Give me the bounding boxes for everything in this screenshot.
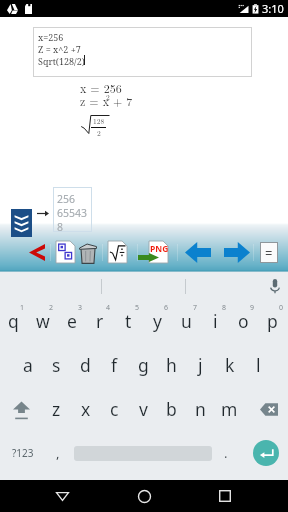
staticText: d xyxy=(80,353,91,377)
staticText: q xyxy=(8,309,19,333)
staticText: Z = x^2 +7 xyxy=(38,43,81,55)
staticText: r xyxy=(96,309,104,333)
staticText: 7 xyxy=(193,303,198,313)
button[interactable]: w xyxy=(29,307,58,341)
button[interactable]: v xyxy=(130,395,159,429)
button[interactable]: y xyxy=(144,307,173,341)
staticText: z xyxy=(52,397,61,421)
button[interactable]: a xyxy=(14,351,43,385)
button[interactable]: Insert formula xyxy=(107,240,128,264)
staticText: 3:10 xyxy=(262,1,284,16)
button[interactable]: . xyxy=(214,438,238,468)
button[interactable]: z xyxy=(43,395,72,429)
button[interactable]: e xyxy=(58,307,87,341)
button[interactable]: k xyxy=(216,351,245,385)
staticText: 65543 xyxy=(57,206,88,220)
staticText: . xyxy=(224,444,228,462)
button[interactable]: h xyxy=(158,351,187,385)
button[interactable]: q xyxy=(0,307,29,341)
button[interactable]: i xyxy=(202,307,231,341)
button[interactable]: Delete xyxy=(79,243,97,265)
staticText: y xyxy=(153,309,162,333)
button[interactable]: c xyxy=(101,395,130,429)
staticText: , xyxy=(56,444,60,462)
button[interactable]: Shift xyxy=(6,396,36,426)
staticText: 128 xyxy=(93,116,105,127)
staticText: 5 xyxy=(135,303,140,313)
staticText: 2 xyxy=(49,303,54,313)
button[interactable]: Backspace xyxy=(253,394,284,424)
button[interactable]: b xyxy=(158,395,187,429)
button[interactable]: Undo xyxy=(27,242,46,262)
button[interactable]: Voice input xyxy=(264,275,286,297)
staticText: 3 xyxy=(78,303,83,313)
button[interactable]: l xyxy=(245,351,274,385)
staticText: e xyxy=(67,309,77,333)
staticText: = xyxy=(265,244,273,262)
button[interactable]: j xyxy=(187,351,216,385)
button[interactable]: r xyxy=(86,307,115,341)
staticText: t xyxy=(125,309,132,333)
staticText: h xyxy=(166,353,177,377)
button[interactable]: t xyxy=(115,307,144,341)
button[interactable]: Home xyxy=(124,480,164,512)
staticText: 9 xyxy=(250,303,255,313)
button[interactable]: Next xyxy=(223,242,250,263)
button[interactable]: g xyxy=(130,351,159,385)
staticText: p xyxy=(267,309,278,333)
button[interactable]: Recents xyxy=(205,480,245,512)
staticText: 2 xyxy=(106,92,110,103)
staticText: m xyxy=(221,397,238,421)
staticText: g xyxy=(138,353,149,377)
staticText: c xyxy=(110,397,119,421)
staticText: j xyxy=(198,353,203,377)
staticText: z = x xyxy=(80,92,109,109)
staticText: 2 xyxy=(97,128,101,139)
staticText: 8 xyxy=(222,303,227,313)
button[interactable]: u xyxy=(173,307,202,341)
staticText: 256 xyxy=(57,192,76,206)
staticText: w xyxy=(36,309,50,333)
button[interactable]: Previous xyxy=(184,242,211,263)
staticText: v xyxy=(139,397,148,421)
staticText: u xyxy=(181,309,192,333)
button[interactable] xyxy=(96,272,192,303)
button[interactable]: p xyxy=(259,307,288,341)
button[interactable]: m xyxy=(216,395,245,429)
staticText: 4 xyxy=(106,303,111,313)
button[interactable]: Copy xyxy=(55,240,76,264)
button[interactable]: f xyxy=(101,351,130,385)
staticText: l xyxy=(256,353,261,377)
button[interactable]: 256 xyxy=(53,187,92,232)
staticText: PNG xyxy=(150,243,169,255)
staticText: 0 xyxy=(279,303,284,313)
staticText: 6 xyxy=(164,303,169,313)
button[interactable]: d xyxy=(72,351,101,385)
button[interactable]: n xyxy=(187,395,216,429)
button[interactable]: x xyxy=(72,395,101,429)
staticText: + 7 xyxy=(113,92,133,109)
button[interactable] xyxy=(192,272,288,303)
staticText: 1 xyxy=(20,303,25,313)
staticText: ?123 xyxy=(12,446,34,460)
staticText: f xyxy=(111,353,118,377)
button[interactable]: Enter xyxy=(253,440,279,466)
staticText: x xyxy=(81,397,91,421)
button[interactable]: x=256 xyxy=(33,27,252,77)
button[interactable]: Back xyxy=(42,480,82,512)
button[interactable]: s xyxy=(43,351,72,385)
staticText: Sqrt(128/2) xyxy=(38,55,85,67)
staticText: x = 256 xyxy=(80,79,122,96)
staticText: o xyxy=(238,309,249,333)
button[interactable]: ?123 xyxy=(4,438,41,468)
staticText: k xyxy=(225,353,235,377)
button[interactable] xyxy=(72,438,214,468)
button[interactable]: Export PNG xyxy=(148,240,169,264)
staticText: n xyxy=(195,397,206,421)
staticText: s xyxy=(52,353,61,377)
staticText: 8 xyxy=(57,220,64,234)
button[interactable]: , xyxy=(45,438,71,468)
button[interactable]: Evaluate xyxy=(260,242,278,263)
button[interactable]: o xyxy=(230,307,259,341)
